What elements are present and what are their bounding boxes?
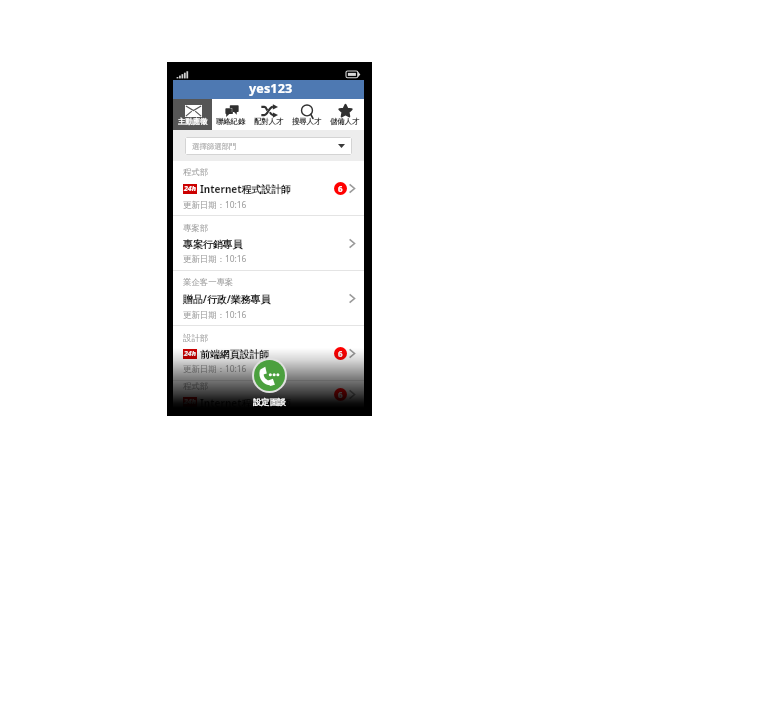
staticText: 更新日期：10:16 [183, 363, 247, 374]
button[interactable]: 聯絡紀錄 [212, 99, 250, 130]
staticText: 6 [338, 183, 343, 194]
staticText: 更新日期：10:16 [183, 309, 247, 320]
button[interactable]: 專案部 [173, 216, 364, 270]
staticText: 搜尋人才 [292, 117, 322, 126]
button[interactable]: 儲備人才 [326, 99, 364, 130]
staticText: 程式部 [183, 167, 209, 178]
staticText: 前端網頁設計師 [200, 348, 270, 360]
staticText: 設定面談 [253, 397, 286, 407]
staticText: 配對人才 [254, 117, 284, 126]
button[interactable]: 配對人才 [250, 99, 288, 130]
button[interactable]: 搜尋人才 [288, 99, 326, 130]
staticText: 贈品/行政/業務專員 [183, 292, 271, 306]
staticText: Internet程式設計師 [200, 396, 291, 408]
staticText: 聯絡紀錄 [216, 117, 246, 126]
staticText: 6 [338, 389, 343, 400]
staticText: 儲備人才 [330, 117, 360, 126]
staticText: 專案行銷專員 [183, 238, 243, 250]
staticText: 設計部 [183, 333, 209, 344]
button[interactable]: 程式部 [173, 161, 364, 215]
staticText: 程式部 [183, 381, 209, 392]
button[interactable]: 選擇篩選部門 [185, 137, 352, 155]
button[interactable]: 設計部 [173, 326, 364, 380]
staticText: Internet程式設計師 [200, 182, 291, 196]
staticText: 業企客一專案 [183, 277, 234, 288]
staticText: 更新日期：10:16 [183, 199, 247, 210]
staticText: yes123 [249, 80, 293, 97]
button[interactable]: 設定面談 [254, 360, 285, 391]
staticText: 專案部 [183, 223, 209, 234]
button[interactable]: 主動應徵 [173, 99, 212, 130]
staticText: 更新日期：10:16 [183, 253, 247, 264]
staticText: 主動應徵 [178, 117, 208, 126]
button[interactable]: 業企客一專案 [173, 271, 364, 325]
staticText: 24h [184, 349, 196, 359]
staticText: 選擇篩選部門 [192, 142, 237, 151]
staticText: 24h [184, 397, 196, 407]
staticText: 6 [338, 348, 343, 359]
staticText: 24h [184, 184, 196, 194]
button[interactable]: 程式部 [173, 381, 364, 408]
